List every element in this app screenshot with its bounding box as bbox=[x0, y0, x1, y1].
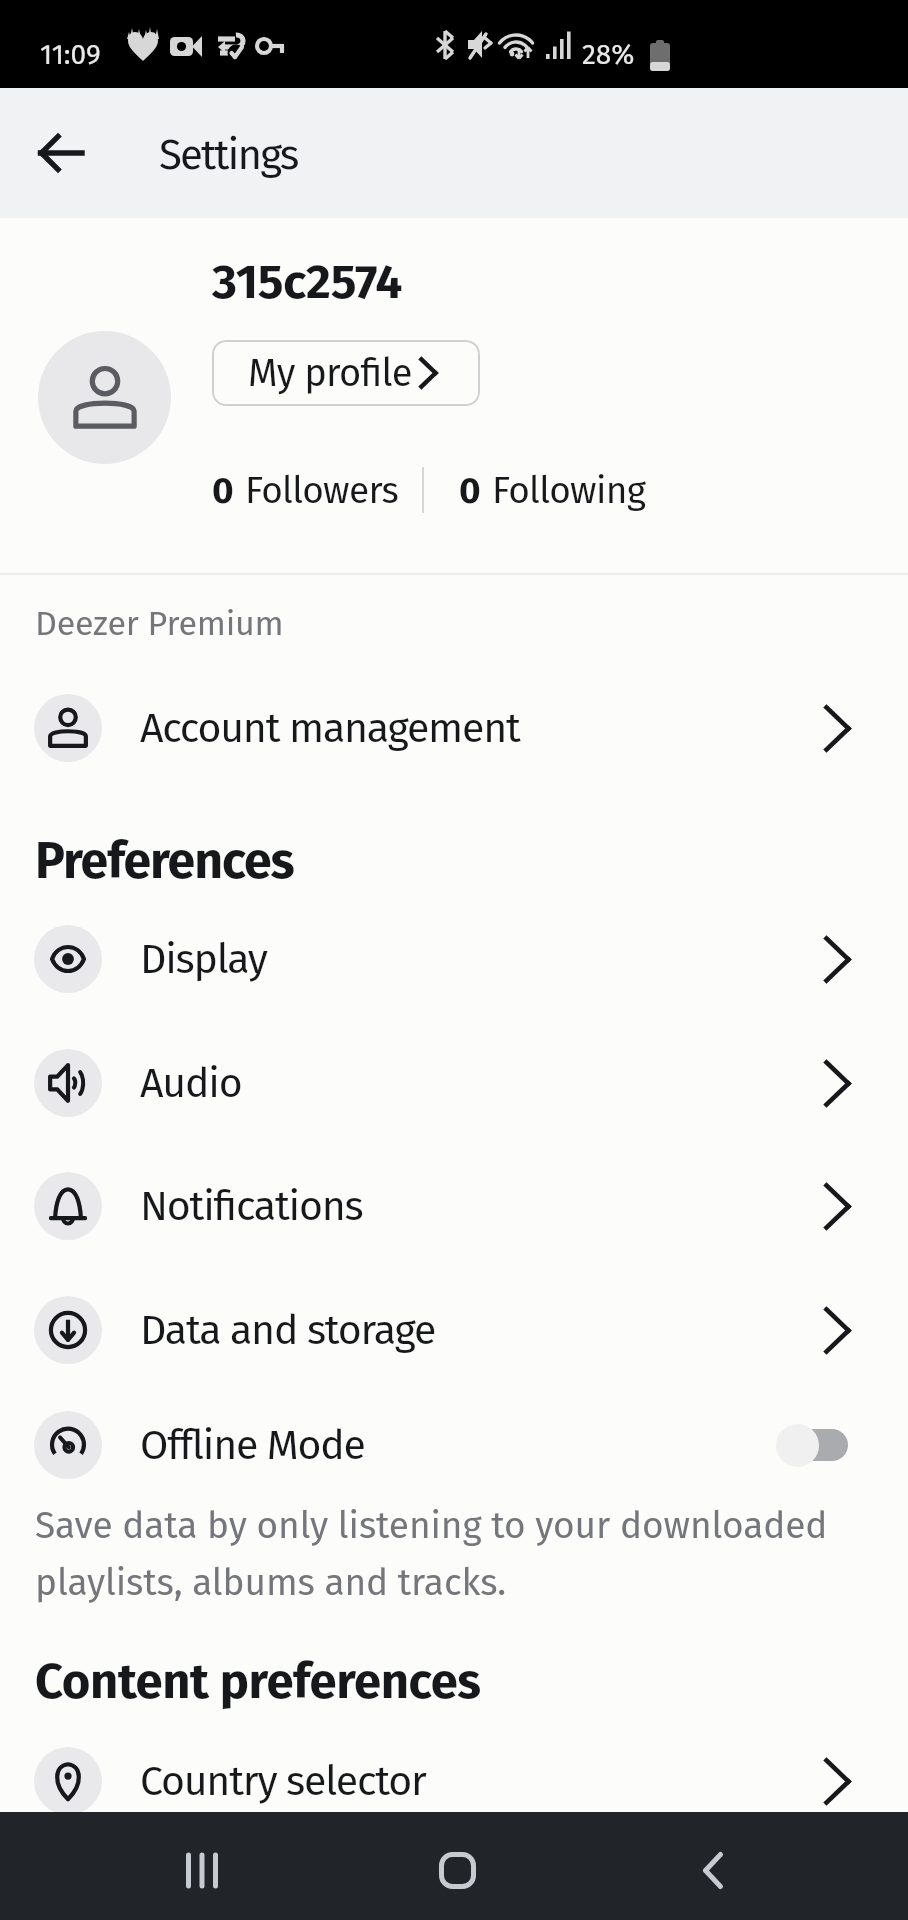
staticText: Following bbox=[492, 468, 646, 512]
staticText: 0 bbox=[212, 468, 234, 512]
staticText: Offline Mode bbox=[140, 1421, 776, 1470]
staticText: Data and storage bbox=[140, 1306, 824, 1355]
button[interactable]: Offline Mode toggle bbox=[776, 1422, 848, 1468]
button[interactable]: Back bbox=[17, 109, 105, 197]
staticText: Content preferences bbox=[35, 1652, 481, 1711]
staticText: Deezer Premium bbox=[35, 603, 284, 644]
button[interactable]: Back bbox=[645, 1816, 780, 1920]
staticText: Account management bbox=[140, 704, 824, 753]
button[interactable]: Home bbox=[390, 1816, 525, 1920]
staticText: Followers bbox=[245, 468, 398, 512]
button[interactable]: Audio bbox=[0, 1021, 908, 1145]
staticText: 28% bbox=[582, 38, 635, 72]
button[interactable]: Offline Mode bbox=[0, 1388, 908, 1502]
staticText: Display bbox=[140, 935, 824, 984]
staticText: Settings bbox=[159, 130, 298, 180]
staticText: Preferences bbox=[35, 831, 294, 891]
staticText: Save data by only listening to your down… bbox=[35, 1503, 828, 1605]
button[interactable]: 0 bbox=[459, 468, 646, 512]
staticText: My profile bbox=[248, 350, 412, 396]
staticText: Country selector bbox=[140, 1757, 824, 1806]
staticText: Audio bbox=[140, 1059, 824, 1108]
button[interactable]: Account management bbox=[0, 666, 908, 790]
button[interactable]: My profile bbox=[212, 340, 480, 406]
button[interactable]: Notifications bbox=[0, 1144, 908, 1268]
staticText: 315c2574 bbox=[212, 253, 403, 311]
staticText: 11:09 bbox=[40, 38, 101, 72]
button[interactable]: Recent apps bbox=[135, 1816, 270, 1920]
staticText: 0 bbox=[459, 468, 481, 512]
button[interactable]: Display bbox=[0, 897, 908, 1021]
button[interactable]: Data and storage bbox=[0, 1268, 908, 1392]
staticText: Notifications bbox=[140, 1182, 824, 1231]
button[interactable]: Profile picture bbox=[38, 331, 171, 464]
button[interactable]: 0 bbox=[212, 468, 398, 512]
button[interactable]: Country selector bbox=[0, 1719, 908, 1843]
